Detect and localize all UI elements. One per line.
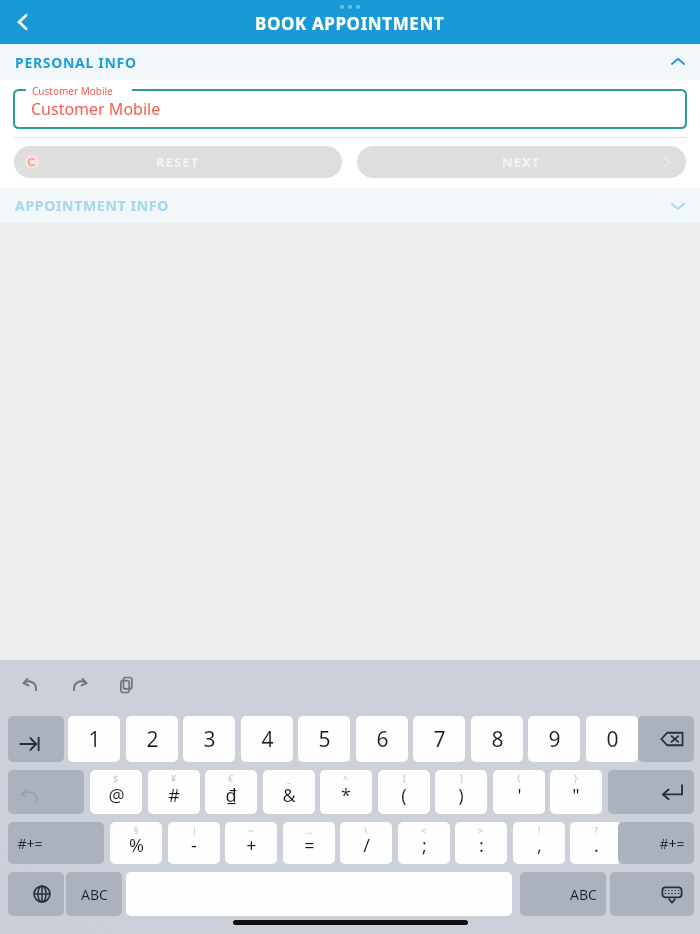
button[interactable]: Return [608,770,694,814]
staticText: ¥ [171,772,177,784]
button[interactable]: 7 [413,716,465,762]
staticText: 1 [88,725,101,754]
staticText: $ [113,772,119,784]
staticText: ^ [343,772,349,784]
staticText: @ [108,783,125,808]
staticText: : [479,833,484,858]
staticText: ! [538,824,541,836]
staticText: RESET [156,153,200,171]
button[interactable]: § [110,822,162,864]
staticText: ABC [570,885,597,904]
button[interactable]: Globe [8,872,64,916]
button[interactable]: Backspace [638,716,694,762]
button[interactable]: ABC [66,872,122,916]
staticText: & [282,783,296,808]
staticText: + [246,833,257,858]
button[interactable]: 0 [586,716,638,762]
staticText: BOOK APPOINTMENT [255,12,445,35]
staticText: ₫ [225,783,237,808]
button[interactable]: RESET [14,146,342,178]
staticText: #+= [659,834,685,853]
staticText: 9 [548,725,561,754]
button[interactable]: \ [340,822,392,864]
staticText: APPOINTMENT INFO [15,196,169,215]
staticText: ( [401,783,407,808]
staticText: . [594,833,599,858]
staticText: \ [364,824,368,836]
staticText: 6 [376,725,389,754]
button[interactable]: > [455,822,507,864]
button[interactable]: Hide keyboard [610,872,694,916]
staticText: NEXT [502,153,541,171]
staticText: > [478,824,484,836]
button[interactable]: #+= [8,822,104,864]
staticText: = [304,833,315,858]
staticText: … [305,824,313,836]
staticText: < [421,824,427,836]
button[interactable]: { [493,770,545,814]
button[interactable]: APPOINTMENT INFO [0,188,700,223]
staticText: ABC [81,885,108,904]
staticText: # [168,783,180,808]
staticText: ] [460,772,463,784]
staticText: 0 [606,725,619,754]
button[interactable]: NEXT [357,146,686,178]
staticText: 8 [491,725,504,754]
staticText: | [192,824,197,836]
button[interactable]: #+= [618,822,694,864]
button[interactable]: … [283,822,335,864]
staticText: € [228,772,234,784]
button[interactable]: $ [90,770,142,814]
staticText: * [341,783,351,808]
staticText: #+= [17,834,43,853]
button[interactable]: 4 [241,716,293,762]
staticText: § [134,824,139,836]
staticText: [ [403,772,406,784]
button[interactable]: € [205,770,257,814]
button[interactable]: ABC [520,872,606,916]
staticText: Customer Mobile [31,98,161,120]
button[interactable]: 6 [356,716,408,762]
button[interactable]: 1 [68,716,120,762]
button[interactable]: Tab [8,716,64,762]
staticText: " [572,783,580,808]
button[interactable]: 8 [471,716,523,762]
button[interactable]: [ [378,770,430,814]
button[interactable]: undo [18,672,44,698]
staticText: PERSONAL INFO [15,53,137,72]
button[interactable]: 5 [298,716,350,762]
button[interactable]: 3 [183,716,235,762]
staticText: % [129,833,144,858]
button[interactable]: | [168,822,220,864]
button[interactable]: ] [435,770,487,814]
staticText: 2 [146,725,159,754]
button[interactable]: Back [0,0,46,44]
staticText: } [574,772,578,784]
staticText: , [537,833,542,858]
button[interactable]: paste [114,672,140,698]
button[interactable]: ~ [225,822,277,864]
staticText: ; [422,833,427,858]
button[interactable]: ¥ [148,770,200,814]
staticText: 5 [318,725,331,754]
staticText: _ [287,772,291,784]
button[interactable]: ^ [320,770,372,814]
staticText: 7 [433,725,446,754]
staticText: ) [458,783,464,808]
button[interactable]: ? [570,822,622,864]
staticText: / [363,833,370,858]
button[interactable]: } [550,770,602,814]
button[interactable]: PERSONAL INFO [0,44,700,80]
staticText: Customer Mobile [32,84,113,98]
button[interactable]: 2 [126,716,178,762]
staticText: { [517,772,521,784]
button[interactable]: Undo [8,770,84,814]
button[interactable]: 9 [528,716,580,762]
button[interactable]: redo [66,672,92,698]
button[interactable]: ! [513,822,565,864]
button[interactable]: _ [263,770,315,814]
staticText: 4 [261,725,274,754]
staticText: - [191,833,197,858]
button[interactable]: < [398,822,450,864]
